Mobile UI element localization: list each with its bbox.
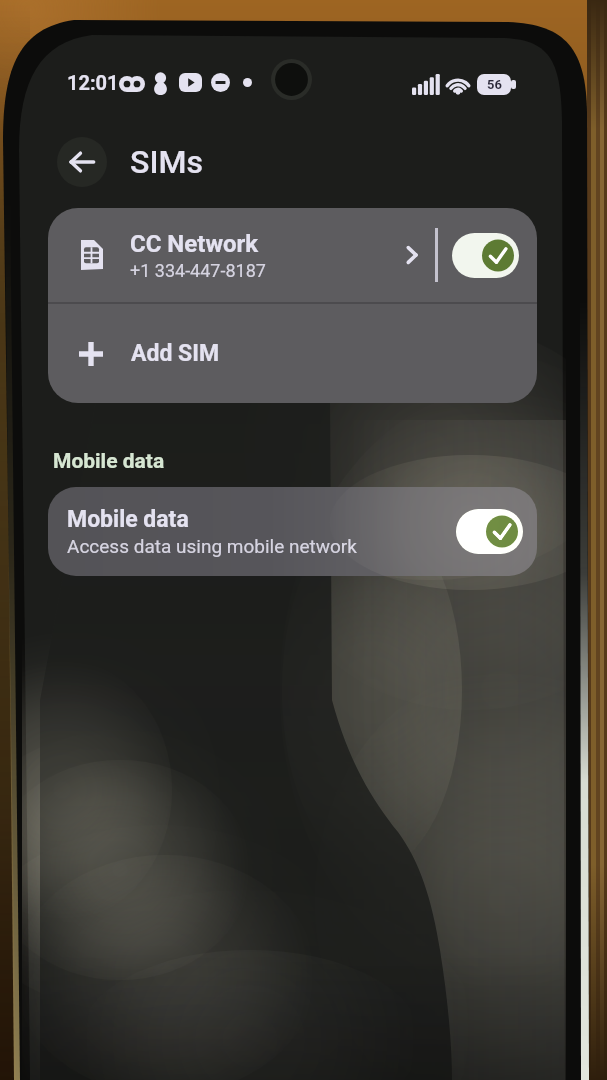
button[interactable]: Back: [57, 137, 107, 187]
staticText: Add SIM: [131, 340, 220, 367]
button[interactable]: CC Network: [48, 208, 537, 302]
staticText: +1 334-447-8187: [130, 260, 266, 281]
button[interactable]: Mobile data: [48, 487, 537, 576]
staticText: 12:01: [67, 71, 119, 94]
staticText: SIMs: [130, 143, 203, 181]
staticText: Mobile data: [53, 449, 165, 474]
staticText: Mobile data: [67, 506, 189, 533]
button[interactable]: Toggle: [452, 233, 519, 278]
staticText: Access data using mobile network: [67, 535, 357, 557]
staticText: CC Network: [130, 230, 259, 258]
button[interactable]: Toggle: [456, 509, 523, 554]
staticText: 56: [487, 77, 502, 92]
button[interactable]: Add SIM: [48, 304, 537, 403]
